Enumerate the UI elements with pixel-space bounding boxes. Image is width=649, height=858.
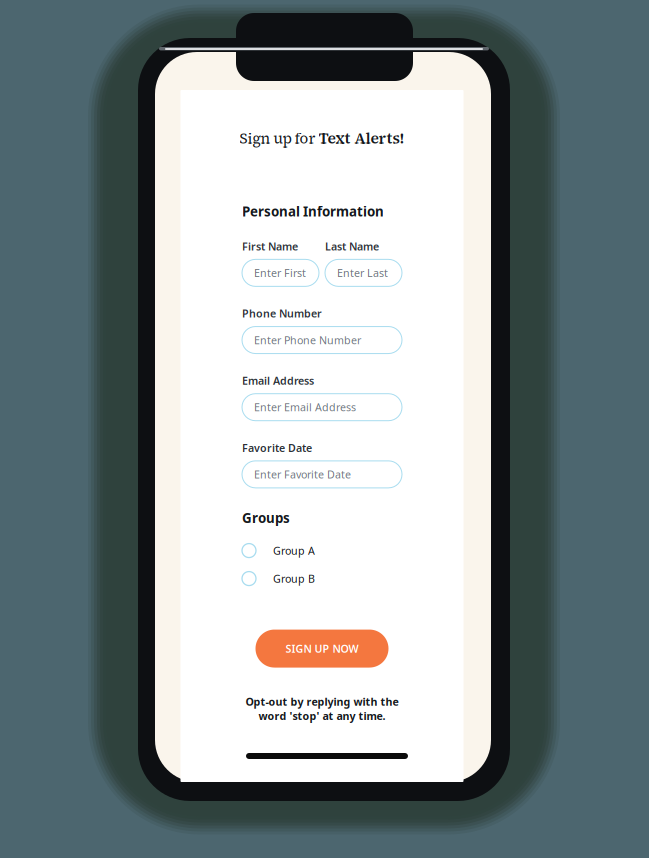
staticText: Enter Last <box>337 266 388 280</box>
button[interactable]: Enter Last <box>325 259 402 286</box>
staticText: word 'stop' at any time. <box>258 709 385 723</box>
staticText: Enter Phone Number <box>254 333 361 347</box>
button[interactable]: Enter First <box>242 259 319 286</box>
staticText: SIGN UP NOW <box>285 641 358 656</box>
staticText: Last Name <box>325 239 379 253</box>
staticText: Opt-out by replying with the <box>245 695 398 709</box>
staticText: Groups <box>242 509 290 527</box>
button[interactable]: Enter Phone Number <box>242 326 402 353</box>
staticText: First Name <box>242 239 298 253</box>
staticText: Enter First <box>254 266 306 280</box>
staticText: Enter Favorite Date <box>254 467 351 481</box>
staticText: Group B <box>273 571 315 586</box>
staticText: Group A <box>273 543 315 558</box>
staticText: Enter Email Address <box>254 400 356 414</box>
staticText: Personal Information <box>242 202 384 220</box>
staticText: Email Address <box>242 373 314 388</box>
button[interactable]: SIGN UP NOW <box>255 630 388 668</box>
button[interactable]: Group B <box>242 572 402 586</box>
button[interactable]: Group A <box>242 544 402 558</box>
button[interactable]: Enter Email Address <box>242 394 402 421</box>
button[interactable]: Enter Favorite Date <box>242 461 402 488</box>
staticText: Sign up for Text Alerts! <box>239 128 404 148</box>
staticText: Phone Number <box>242 306 322 321</box>
staticText: Favorite Date <box>242 441 312 455</box>
